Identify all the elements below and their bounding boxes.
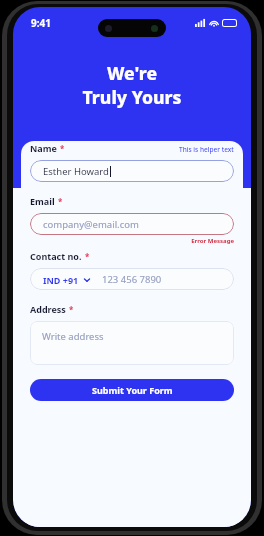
button[interactable]: Write address (30, 321, 234, 365)
button[interactable]: company@email.com (30, 213, 234, 235)
staticText: Contact no. (30, 250, 82, 262)
staticText: Email (30, 195, 55, 207)
staticText: Error Message (30, 237, 234, 245)
staticText: 9:41 (31, 16, 51, 30)
staticText: We're Truly Yours (13, 61, 251, 109)
staticText: Esther Howard (43, 165, 109, 178)
button[interactable]: Submit Your Form (30, 379, 234, 401)
staticText: * (69, 304, 74, 315)
staticText: * (85, 251, 90, 262)
staticText: * (58, 196, 63, 207)
button[interactable]: IND +91 (30, 268, 234, 290)
staticText: Address (30, 303, 66, 315)
staticText: 123 456 7890 (102, 273, 162, 286)
staticText: Name (30, 142, 57, 154)
staticText: IND +91 (43, 274, 79, 286)
staticText: Submit Your Form (92, 384, 173, 396)
staticText: * (60, 143, 65, 154)
staticText: Write address (42, 330, 104, 343)
staticText: This is helper text (179, 145, 234, 154)
other: Select country code (83, 276, 91, 284)
button[interactable]: Esther Howard (30, 160, 234, 182)
staticText: company@email.com (43, 218, 139, 231)
